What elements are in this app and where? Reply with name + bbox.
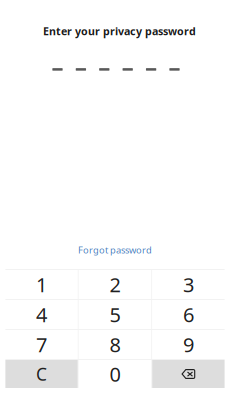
- staticText: C: [36, 362, 47, 385]
- button[interactable]: 5: [79, 300, 151, 329]
- staticText: Enter your privacy password: [43, 24, 196, 38]
- button[interactable]: 4: [5, 300, 78, 329]
- button[interactable]: 3: [152, 270, 225, 299]
- staticText: 1: [36, 271, 47, 298]
- staticText: Forgot password: [78, 244, 152, 256]
- staticText: 5: [109, 301, 120, 328]
- staticText: 2: [109, 271, 120, 298]
- staticText: 0: [109, 361, 120, 387]
- button[interactable]: 2: [79, 270, 151, 299]
- staticText: 8: [109, 331, 120, 358]
- button[interactable]: 7: [5, 330, 78, 359]
- staticText: 3: [183, 271, 194, 298]
- staticText: 9: [183, 331, 194, 358]
- button[interactable]: 0: [79, 360, 151, 388]
- button[interactable]: 1: [5, 270, 78, 299]
- button[interactable]: 6: [152, 300, 225, 329]
- button[interactable]: Forgot password: [68, 238, 171, 262]
- button[interactable]: 9: [152, 330, 225, 359]
- button[interactable]: 8: [79, 330, 151, 359]
- button[interactable]: C: [5, 360, 78, 388]
- staticText: 4: [36, 301, 47, 328]
- staticText: 7: [36, 331, 47, 358]
- staticText: 6: [183, 301, 194, 328]
- button[interactable]: Delete: [152, 360, 225, 388]
